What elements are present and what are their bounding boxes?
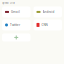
staticText: Android bbox=[42, 10, 54, 14]
staticText: Twitter bbox=[10, 23, 20, 27]
button[interactable]: CNN bbox=[33, 19, 62, 30]
button[interactable]: Gmail bbox=[2, 6, 30, 17]
staticText: Gmail bbox=[11, 10, 20, 14]
staticText: Speed Dial bbox=[2, 1, 15, 4]
staticText: CNN bbox=[41, 23, 47, 27]
button[interactable]: Android bbox=[33, 6, 62, 17]
button[interactable]: Twitter bbox=[2, 19, 30, 30]
button[interactable]: Add shortcut bbox=[2, 33, 30, 41]
